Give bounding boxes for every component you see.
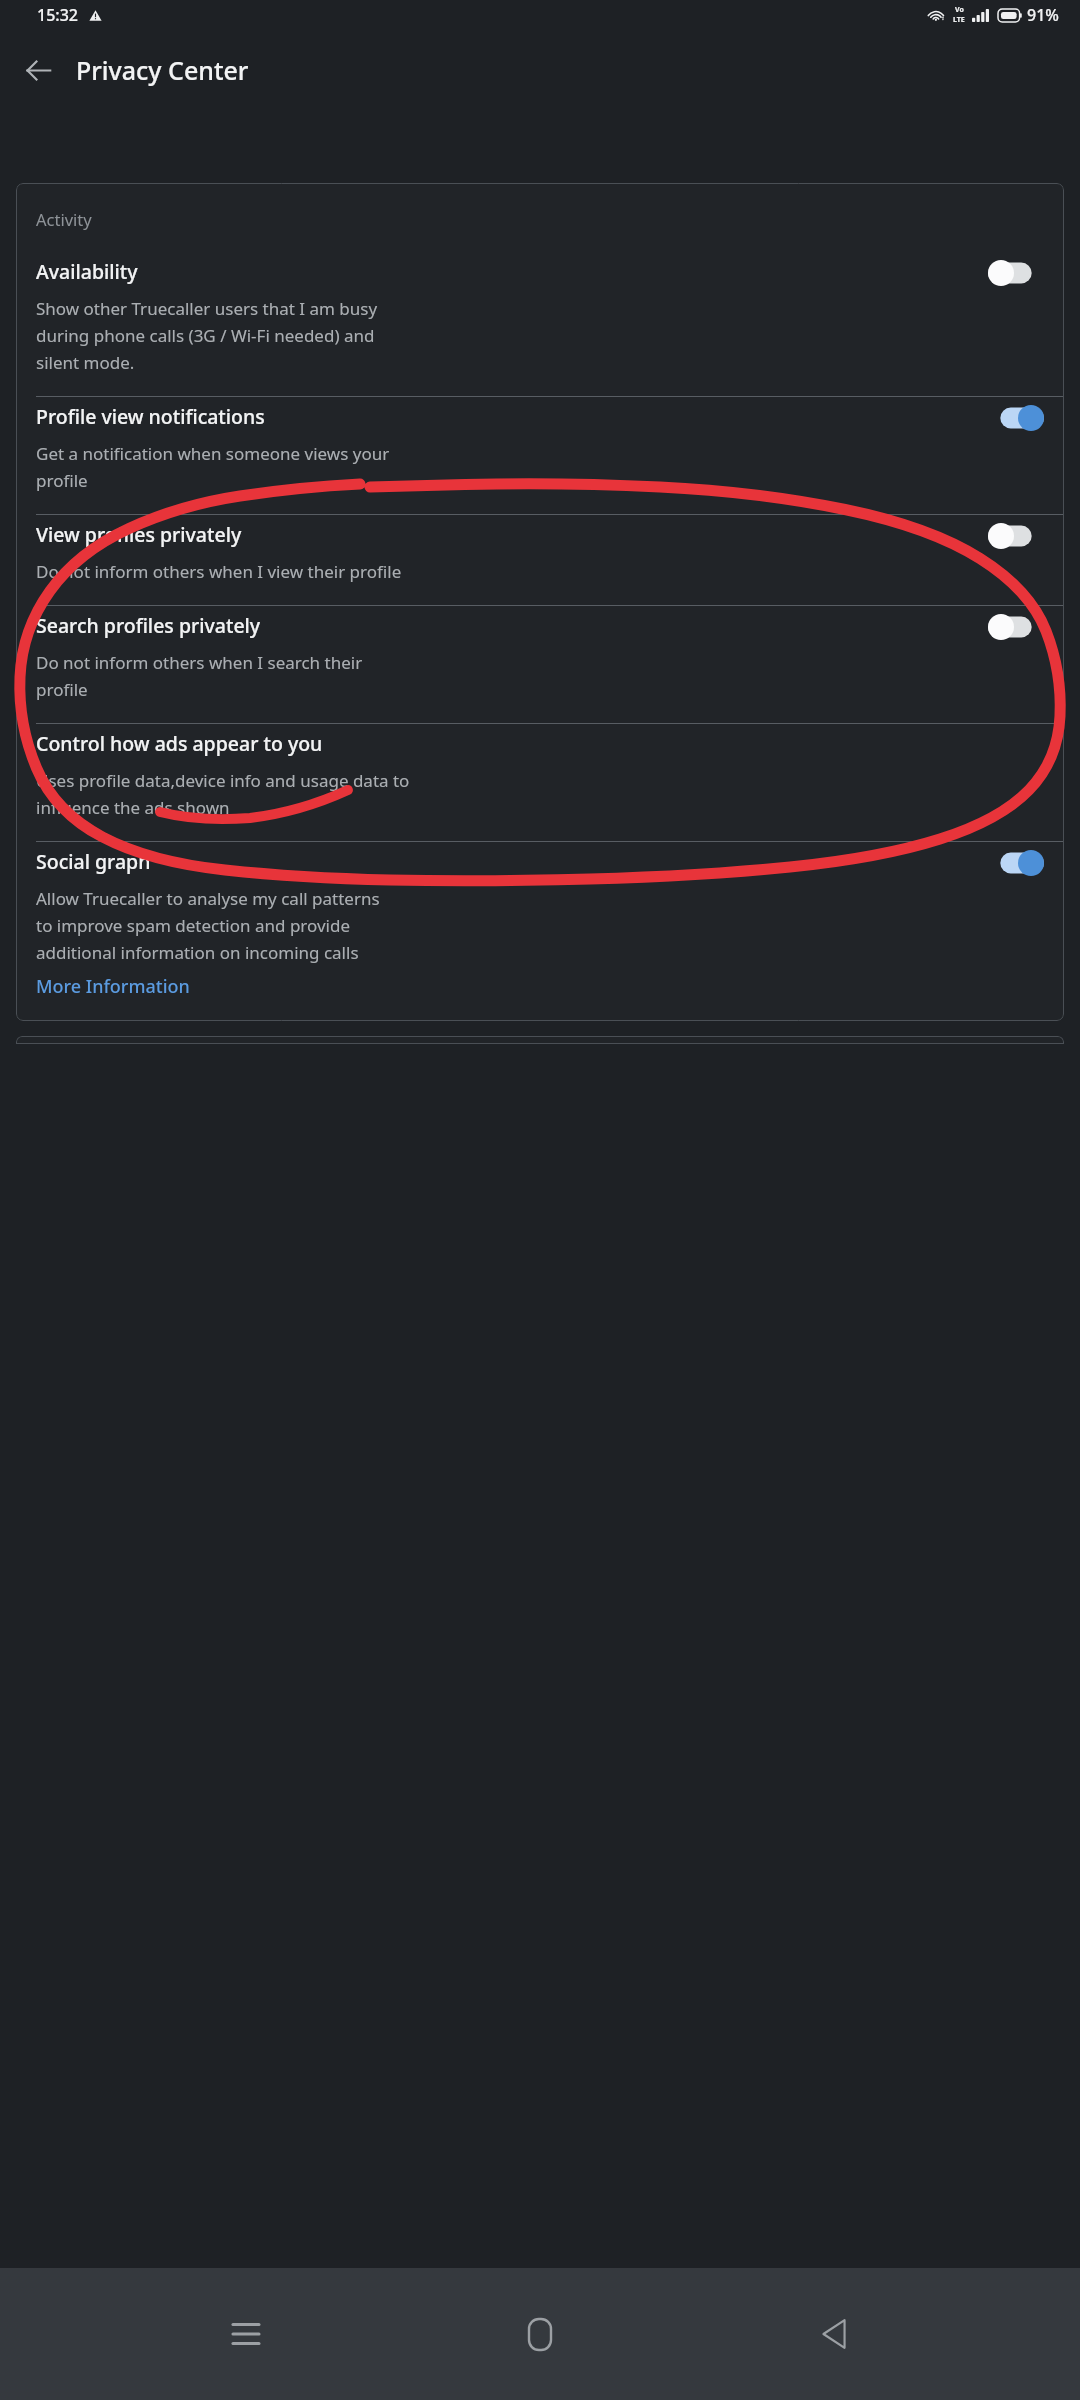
button[interactable]: Search profiles privately [16,606,1064,723]
button[interactable]: Availability [16,252,1064,396]
staticText: Activity [36,208,92,230]
button[interactable]: Toggle on [988,405,1044,431]
staticText: Privacy Center [76,53,249,87]
button[interactable]: Back [786,2286,882,2382]
staticText: Get a notification when someone views yo… [36,442,390,492]
staticText: Allow Truecaller to analyse my call patt… [36,887,380,964]
staticText: LTE [953,15,965,25]
button[interactable]: Social graph [16,842,1064,974]
staticText: More Information [36,974,190,999]
button[interactable]: Control how ads appear to you [16,724,1064,841]
button[interactable]: Toggle off [988,614,1044,640]
button[interactable]: Profile view notifications [16,397,1064,514]
staticText: Show other Truecaller users that I am bu… [36,297,378,374]
staticText: Vo [955,5,964,15]
button[interactable]: Recent apps [198,2286,294,2382]
button[interactable]: View profiles privately [16,515,1064,605]
staticText: 91% [1027,4,1059,26]
staticText: Availability [36,258,138,285]
button[interactable]: Toggle on [988,850,1044,876]
staticText: Control how ads appear to you [36,730,323,757]
button[interactable]: Back [14,46,62,94]
staticText: 15:32 [37,4,78,26]
button[interactable]: Toggle off [988,260,1044,286]
staticText: Search profiles privately [36,612,261,639]
staticText: Do not inform others when I search their… [36,651,363,701]
staticText: Social graph [36,848,151,875]
staticText: Do not inform others when I view their p… [36,560,402,583]
staticText: Uses profile data,device info and usage … [36,769,410,819]
button[interactable]: More Information [36,974,190,999]
button[interactable]: Toggle off [988,523,1044,549]
staticText: Profile view notifications [36,403,265,430]
staticText: View profiles privately [36,521,242,548]
button[interactable]: Home [492,2286,588,2382]
